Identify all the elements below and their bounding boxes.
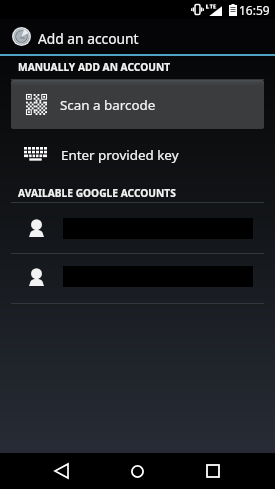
button[interactable] <box>0 254 275 303</box>
button[interactable]: Enter provided key <box>0 129 275 181</box>
staticText: AVAILABLE GOOGLE ACCOUNTS <box>18 186 176 200</box>
staticText: Enter provided key <box>61 146 179 164</box>
staticText: MANUALLY ADD AN ACCOUNT <box>18 60 171 74</box>
button[interactable]: Scan a barcode <box>11 80 264 129</box>
staticText: Add an account <box>38 29 139 48</box>
button[interactable]: Home <box>99 453 175 489</box>
button[interactable] <box>0 203 275 253</box>
button[interactable]: Recent apps <box>175 453 251 489</box>
staticText: 16:59 <box>239 2 270 18</box>
button[interactable]: Back <box>24 453 99 489</box>
staticText: Scan a barcode <box>60 96 156 114</box>
